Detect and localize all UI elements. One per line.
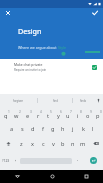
staticText: t — [47, 112, 50, 120]
button[interactable]: o — [83, 107, 93, 122]
staticText: find — [53, 99, 58, 103]
button[interactable]: finds — [73, 94, 94, 107]
button[interactable]: Close — [4, 9, 12, 17]
staticText: 0 — [100, 110, 102, 114]
button[interactable]: Backspace — [88, 136, 103, 151]
button[interactable]: j — [68, 122, 78, 136]
staticText: n — [71, 140, 75, 148]
button[interactable]: Shift — [0, 136, 16, 151]
staticText: i — [77, 112, 79, 120]
button[interactable]: b — [58, 136, 68, 151]
button[interactable]: n — [68, 136, 78, 151]
staticText: Require an invite to join — [14, 68, 47, 72]
button[interactable]: g — [48, 122, 58, 136]
button[interactable]: z — [16, 136, 27, 151]
staticText: Style — [58, 45, 67, 50]
button[interactable]: u — [63, 107, 73, 122]
staticText: f — [42, 125, 44, 133]
button[interactable]: c — [38, 136, 48, 151]
staticText: 9 — [90, 110, 92, 114]
staticText: v — [52, 140, 55, 148]
button[interactable]: . — [72, 151, 83, 170]
staticText: b — [61, 140, 65, 148]
staticText: 5 — [50, 110, 52, 114]
staticText: c — [42, 140, 45, 148]
staticText: 3 — [30, 110, 32, 114]
button[interactable]: r — [33, 107, 43, 122]
button[interactable]: h — [58, 122, 68, 136]
button[interactable]: i — [73, 107, 83, 122]
button[interactable]: Done — [91, 9, 99, 17]
button[interactable]: a — [6, 122, 17, 136]
button[interactable]: ?123 — [0, 151, 11, 170]
staticText: 1 — [8, 110, 10, 114]
staticText: w — [14, 112, 19, 120]
button[interactable]: Recents — [69, 170, 103, 183]
button[interactable]: w — [11, 107, 22, 122]
button[interactable]: m — [78, 136, 88, 151]
staticText: r — [37, 112, 40, 120]
staticText: ?123 — [2, 158, 10, 163]
button[interactable]: forgiven — [0, 94, 37, 107]
staticText: 7 — [70, 110, 72, 114]
staticText: 4 — [40, 110, 42, 114]
staticText: q — [4, 112, 8, 120]
button[interactable]: e — [22, 107, 33, 122]
staticText: o — [86, 112, 90, 120]
button[interactable]: x — [27, 136, 38, 151]
staticText: l — [92, 125, 94, 133]
button[interactable]: d — [28, 122, 38, 136]
button[interactable]: s — [17, 122, 28, 136]
button[interactable]: Back — [0, 170, 35, 183]
staticText: 2 — [19, 110, 21, 114]
button[interactable]: y — [53, 107, 63, 122]
staticText: s — [21, 125, 24, 133]
staticText: Design — [18, 26, 42, 36]
staticText: z — [20, 140, 23, 148]
button[interactable]: l — [88, 122, 98, 136]
staticText: u — [66, 112, 70, 120]
staticText: 6 — [60, 110, 62, 114]
staticText: j — [72, 125, 74, 133]
staticText: Make chat private — [14, 62, 43, 67]
staticText: x — [31, 140, 34, 148]
staticText: finds — [80, 99, 87, 103]
staticText: k — [82, 125, 85, 133]
staticText: a — [10, 125, 14, 133]
button[interactable]: k — [78, 122, 88, 136]
button[interactable]: Home — [35, 170, 69, 183]
staticText: y — [57, 112, 60, 120]
staticText: Where we argue about — [18, 45, 58, 50]
button[interactable]: find — [38, 94, 72, 107]
staticText: e — [26, 112, 30, 120]
staticText: d — [31, 125, 35, 133]
staticText: g — [51, 125, 55, 133]
staticText: , — [15, 156, 17, 163]
button[interactable]: Voice input — [94, 94, 103, 107]
button[interactable]: t — [43, 107, 53, 122]
button[interactable]: , — [11, 151, 20, 170]
staticText: 8 — [80, 110, 82, 114]
button[interactable]: Make chat private — [0, 59, 103, 94]
staticText: m — [80, 140, 86, 148]
button[interactable]: p — [93, 107, 103, 122]
button[interactable]: Enter — [90, 157, 97, 164]
button[interactable]: q — [0, 107, 11, 122]
staticText: h — [61, 125, 65, 133]
button[interactable]: v — [48, 136, 58, 151]
staticText: . — [77, 156, 79, 163]
staticText: p — [96, 112, 100, 120]
staticText: forgiven — [13, 99, 24, 103]
button[interactable]: f — [38, 122, 48, 136]
